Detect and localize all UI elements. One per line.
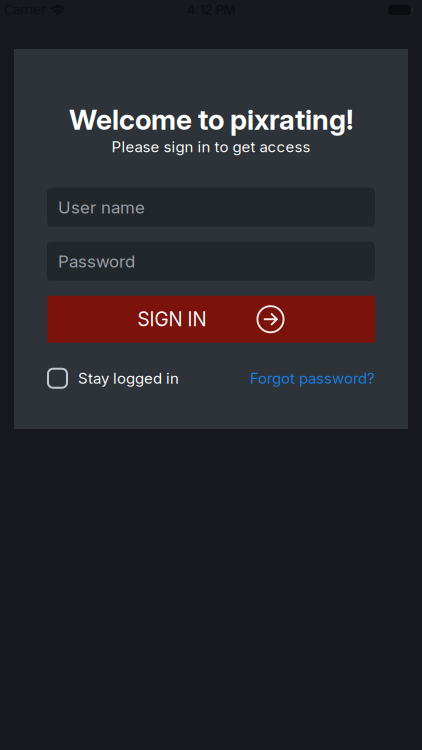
staticText: Please sign in to get access bbox=[111, 138, 310, 156]
button[interactable]: User name bbox=[47, 188, 375, 227]
staticText: Stay logged in bbox=[78, 369, 179, 387]
staticText: SIGN IN bbox=[137, 308, 206, 330]
button[interactable]: Forgot password? bbox=[250, 369, 375, 387]
staticText: Carrier bbox=[4, 2, 46, 18]
button[interactable]: SIGN IN bbox=[47, 296, 375, 343]
staticText: 4:12 PM bbox=[186, 2, 235, 18]
staticText: User name bbox=[58, 197, 145, 217]
staticText: Forgot password? bbox=[250, 369, 375, 387]
staticText: Welcome to pixrating! bbox=[69, 103, 353, 136]
button[interactable]: Password bbox=[47, 242, 375, 281]
staticText: Password bbox=[58, 251, 135, 271]
button[interactable]: Stay logged in bbox=[47, 368, 179, 389]
